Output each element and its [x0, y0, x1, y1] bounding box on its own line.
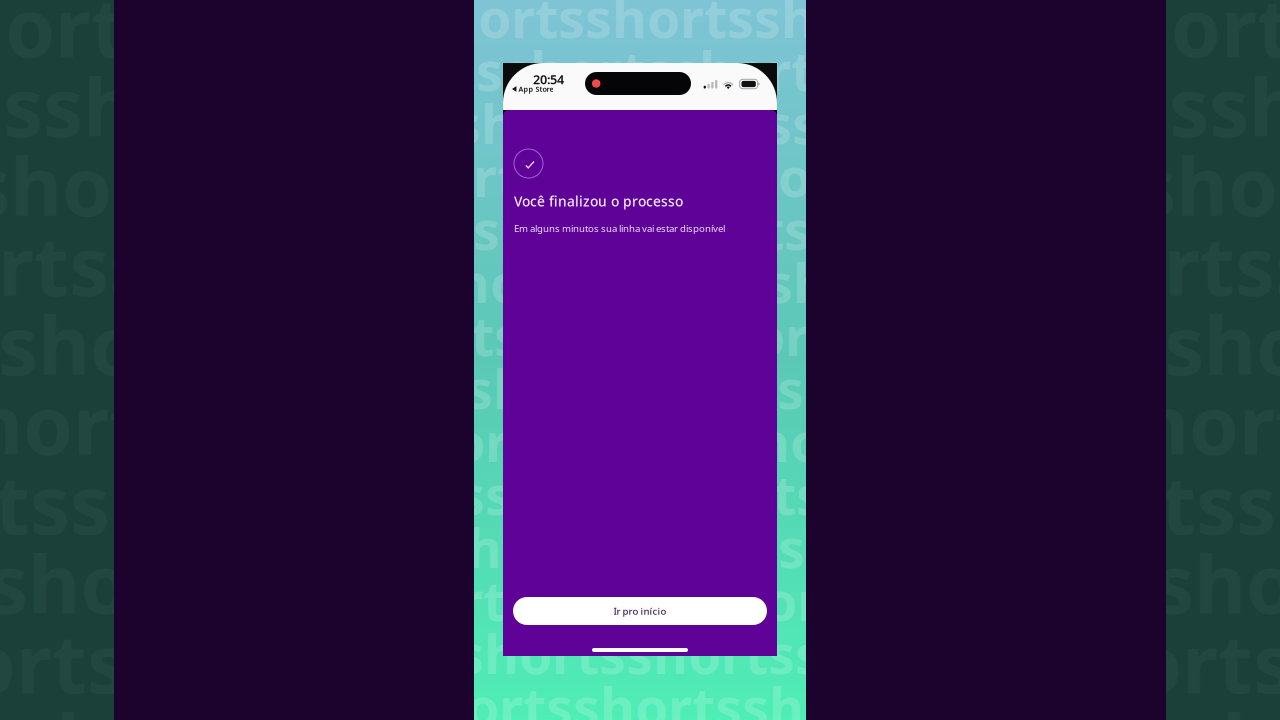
staticText: Você finalizou o processo [514, 192, 683, 210]
staticText: shortsshortsshortsshorts [1154, 529, 1280, 636]
staticText: shortsshortsshortsshorts [929, 688, 1280, 720]
staticText: shortsshortsshortsshorts [466, 353, 1142, 424]
staticText: shortsshortsshortsshorts [0, 291, 757, 397]
staticText: shortsshortsshortsshorts [0, 132, 982, 238]
staticText: shortsshortsshortsshorts [983, 450, 1280, 556]
staticText: shortsshortsshortsshorts [316, 459, 992, 530]
staticText: shortsshortsshortsshorts [454, 88, 1130, 159]
staticText: shortsshortsshortsshorts [334, 35, 1010, 106]
button[interactable]: App Store [512, 85, 553, 93]
staticText: shortsshortsshortsshorts [1040, 609, 1280, 715]
staticText: shortsshortsshortsshorts [364, 565, 1040, 636]
staticText: shortsshortsshortsshorts [390, 406, 1066, 477]
staticText: shortsshortsshortsshorts [911, 291, 1280, 397]
staticText: shortsshortsshortsshorts [404, 671, 1080, 720]
staticText: shortsshortsshortsshorts [0, 688, 775, 720]
button[interactable]: Ir pro início [513, 597, 767, 625]
staticText: shortsshortsshortsshorts [440, 512, 1116, 583]
staticText: shortsshortsshortsshorts [0, 529, 1000, 636]
staticText: shortsshortsshortsshorts [0, 609, 886, 715]
staticText: shortsshortsshortsshorts [1079, 0, 1280, 79]
staticText: Em alguns minutos sua linha vai estar di… [514, 222, 725, 235]
staticText: shortsshortsshortsshorts [288, 618, 964, 689]
staticText: shortsshortsshortsshorts [956, 52, 1280, 159]
staticText: shortsshortsshortsshorts [0, 52, 802, 159]
staticText: Ir pro início [613, 605, 666, 617]
staticText: shortsshortsshortsshorts [0, 450, 829, 556]
staticText: shortsshortsshortsshorts [378, 141, 1054, 212]
staticText: shortsshortsshortsshorts [1136, 132, 1280, 238]
staticText: shortsshortsshortsshorts [428, 247, 1104, 318]
staticText: shortsshortsshortsshorts [0, 0, 925, 79]
staticText: shortsshortsshortsshorts [0, 370, 943, 477]
staticText: shortsshortsshortsshorts [352, 300, 1028, 371]
staticText: App Store [518, 84, 553, 94]
staticText: shortsshortsshortsshorts [416, 0, 1092, 53]
staticText: shortsshortsshortsshorts [0, 211, 868, 318]
staticText: shortsshortsshortsshorts [1022, 211, 1280, 318]
staticText: shortsshortsshortsshorts [304, 194, 980, 265]
staticText: shortsshortsshortsshorts [1097, 370, 1280, 477]
staticText: 20:54 [533, 71, 564, 88]
